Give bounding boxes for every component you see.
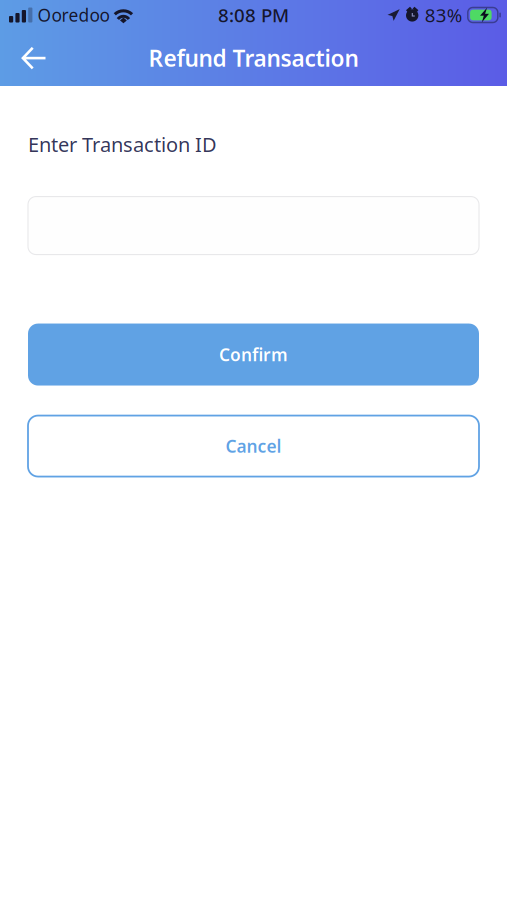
staticText: 83%: [425, 3, 463, 27]
staticText: Confirm: [219, 343, 288, 366]
button[interactable]: Confirm: [28, 324, 479, 386]
button[interactable]: Cancel: [28, 416, 479, 477]
button[interactable]: Back: [11, 35, 57, 81]
staticText: Enter Transaction ID: [28, 131, 217, 158]
staticText: 8:08 PM: [218, 3, 289, 27]
staticText: Cancel: [225, 435, 281, 458]
staticText: Refund Transaction: [148, 43, 358, 73]
staticText: Ooredoo: [37, 3, 109, 26]
